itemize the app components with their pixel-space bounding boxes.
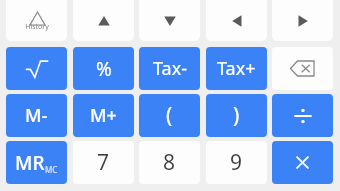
staticText: History xyxy=(25,22,49,32)
button[interactable]: Left xyxy=(206,0,267,41)
button[interactable]: ( xyxy=(139,94,200,137)
button[interactable] xyxy=(6,47,67,90)
button[interactable]: Tax- xyxy=(139,47,200,90)
button[interactable]: ) xyxy=(206,94,267,137)
staticText: MC xyxy=(45,164,58,175)
staticText: M- xyxy=(25,103,48,128)
staticText: 9 xyxy=(230,148,243,177)
button[interactable]: 7 xyxy=(73,141,134,184)
staticText: MR xyxy=(15,150,45,176)
staticText: Tax+ xyxy=(217,56,256,81)
button[interactable]: Tax+ xyxy=(206,47,267,90)
button[interactable]: M- xyxy=(6,94,67,137)
staticText: % xyxy=(96,56,112,82)
button[interactable]: MR xyxy=(6,141,67,184)
button[interactable]: 9 xyxy=(206,141,267,184)
button[interactable]: Right xyxy=(272,0,333,41)
button[interactable]: 8 xyxy=(139,141,200,184)
button[interactable]: % xyxy=(73,47,134,90)
staticText: ( xyxy=(166,101,173,130)
staticText: ) xyxy=(233,101,240,130)
button[interactable] xyxy=(272,94,333,137)
staticText: 7 xyxy=(97,148,110,177)
staticText: 8 xyxy=(163,148,176,177)
button[interactable] xyxy=(272,141,333,184)
staticText: M+ xyxy=(90,103,117,128)
button[interactable]: History xyxy=(6,0,67,41)
staticText: Tax- xyxy=(153,56,187,81)
button[interactable]: Backspace xyxy=(272,47,333,90)
button[interactable]: M+ xyxy=(73,94,134,137)
button[interactable]: Up xyxy=(73,0,134,41)
button[interactable]: Down xyxy=(139,0,200,41)
